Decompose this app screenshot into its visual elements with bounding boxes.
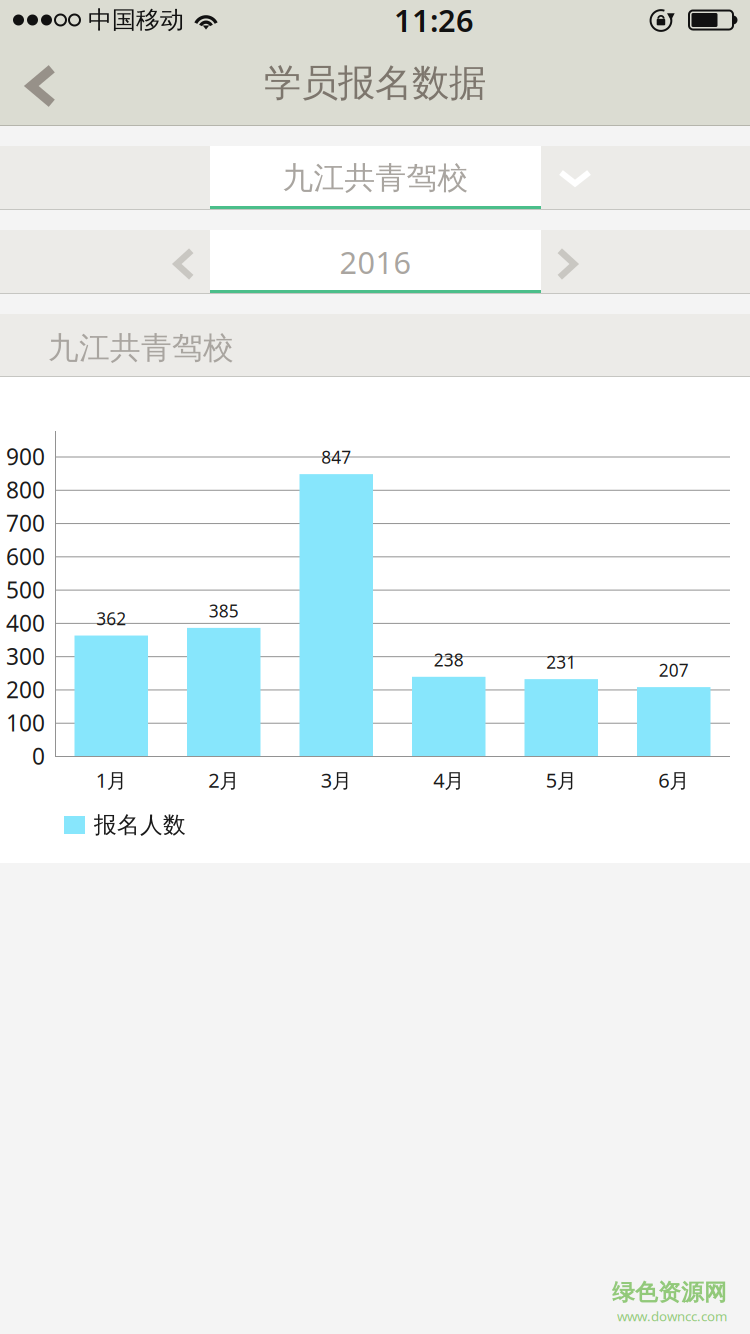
button[interactable]: Choose school [541,146,609,210]
staticText: 700 [6,508,45,538]
staticText: www.downcc.com [617,1307,727,1325]
staticText: 207 [659,659,689,682]
staticText: 2月 [208,767,239,793]
staticText: 600 [6,541,45,571]
staticText: 385 [209,599,239,622]
staticText: 3月 [321,767,352,793]
staticText: 6月 [658,767,689,793]
staticText: 11:26 [394,0,474,40]
staticText: 400 [6,608,45,638]
staticText: 4月 [433,767,464,793]
staticText: 九江共青驾校 [48,329,234,367]
staticText: 238 [434,648,464,671]
staticText: 绿色资源网 [612,1278,727,1306]
staticText: 学员报名数据 [264,60,486,106]
staticText: 847 [321,446,351,469]
staticText: 800 [6,475,45,505]
button[interactable]: Back [0,40,79,126]
button[interactable]: Next year [541,230,593,294]
staticText: 900 [6,441,45,471]
staticText: 2016 [339,242,411,282]
button[interactable]: 2016 [210,230,541,294]
staticText: 362 [96,607,126,630]
staticText: 0 [32,741,45,771]
staticText: 300 [6,641,45,671]
staticText: 报名人数 [94,811,186,839]
staticText: 5月 [546,767,577,793]
button[interactable]: 九江共青驾校 [210,146,541,210]
staticText: 231 [546,651,576,674]
staticText: 100 [6,708,45,738]
staticText: 1月 [96,767,127,793]
staticText: 200 [6,674,45,704]
staticText: 中国移动 [88,5,184,35]
staticText: 500 [6,575,45,605]
staticText: 九江共青驾校 [282,159,468,197]
button[interactable]: Previous year [158,230,210,294]
